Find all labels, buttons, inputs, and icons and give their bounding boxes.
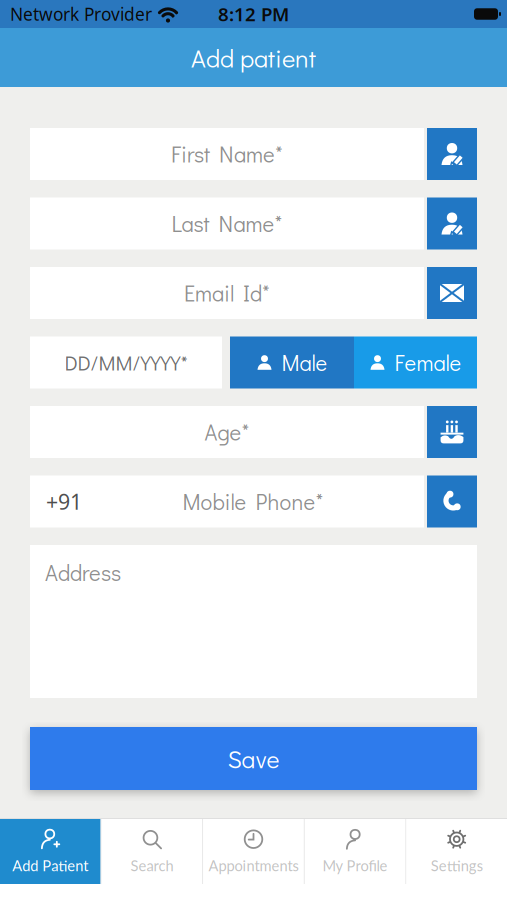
- staticText: Save: [227, 742, 279, 775]
- staticText: 8:12 PM: [218, 2, 289, 26]
- staticText: +91: [46, 487, 82, 516]
- button[interactable]: Last Name*: [427, 197, 477, 249]
- staticText: Add Patient: [12, 857, 88, 874]
- button[interactable]: Female: [354, 336, 477, 388]
- staticText: Last Name*: [171, 209, 282, 238]
- staticText: Network Provider: [10, 2, 152, 25]
- staticText: Male: [281, 348, 327, 377]
- staticText: Female: [394, 348, 461, 377]
- staticText: Email Id*: [184, 279, 270, 307]
- staticText: DD/MM/YYYY*: [64, 349, 187, 376]
- button[interactable]: Search: [102, 818, 202, 884]
- staticText: Add patient: [191, 41, 316, 74]
- staticText: Mobile Phone*: [182, 487, 323, 516]
- button[interactable]: Appointments: [203, 818, 304, 884]
- staticText: Settings: [431, 857, 483, 874]
- button[interactable]: Settings: [406, 818, 507, 884]
- staticText: Age*: [204, 418, 249, 446]
- button[interactable]: Email Id*: [427, 267, 477, 319]
- staticText: Appointments: [208, 857, 298, 874]
- staticText: My Profile: [323, 857, 388, 874]
- button[interactable]: Age*: [427, 406, 477, 458]
- staticText: Search: [130, 857, 173, 874]
- button[interactable]: Mobile Phone: [427, 475, 477, 527]
- staticText: First Name*: [171, 140, 283, 168]
- button[interactable]: Add Patient: [0, 818, 101, 884]
- button[interactable]: Male: [230, 336, 354, 388]
- staticText: Address: [45, 558, 121, 587]
- button[interactable]: First Name*: [427, 128, 477, 180]
- button[interactable]: My Profile: [305, 818, 405, 884]
- button[interactable]: Save: [30, 727, 477, 790]
